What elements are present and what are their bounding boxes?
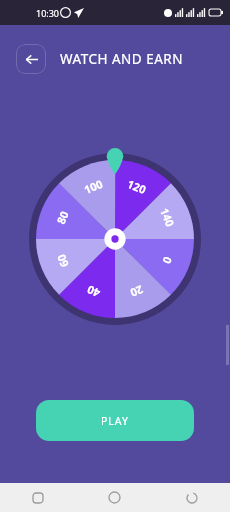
staticText: 10:30 — [36, 7, 60, 19]
button[interactable]: Spin wheel — [0, 0, 230, 512]
button[interactable]: Back — [16, 44, 46, 74]
button[interactable]: Home — [76, 483, 153, 512]
staticText: WATCH AND EARN — [60, 50, 184, 68]
button[interactable]: PLAY — [36, 400, 194, 441]
staticText: PLAY — [101, 414, 129, 428]
button[interactable]: Recents — [0, 483, 76, 512]
button[interactable]: Back — [153, 483, 230, 512]
